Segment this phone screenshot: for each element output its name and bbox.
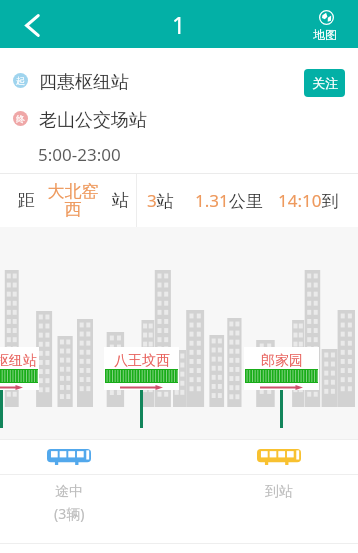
staticText: 郎家园 bbox=[261, 352, 303, 370]
staticText: 3站 bbox=[147, 189, 174, 212]
button[interactable]: Buses arriving bbox=[257, 449, 301, 466]
staticText: 四惠枢纽站 bbox=[39, 71, 129, 94]
staticText: 途中 bbox=[55, 483, 83, 501]
staticText: 大北窑西 bbox=[47, 181, 99, 220]
staticText: 地图 bbox=[313, 27, 337, 42]
staticText: 起 bbox=[16, 75, 25, 86]
staticText: 距 bbox=[18, 190, 35, 211]
staticText: (3辆) bbox=[54, 504, 85, 523]
button[interactable]: 途中 bbox=[47, 483, 91, 523]
staticText: 1 bbox=[172, 9, 186, 40]
staticText: 关注 bbox=[312, 75, 338, 91]
staticText: 八王坟西 bbox=[114, 352, 170, 370]
button[interactable]: Back bbox=[0, 0, 50, 48]
staticText: 到站 bbox=[265, 483, 293, 501]
staticText: 站 bbox=[112, 190, 129, 211]
button[interactable]: Map bbox=[304, 0, 350, 48]
staticText: 1.31公里 bbox=[195, 189, 263, 212]
button[interactable]: Buses en route bbox=[47, 449, 91, 466]
staticText: 14:10到 bbox=[278, 189, 339, 212]
button[interactable]: 到站 bbox=[257, 483, 301, 501]
staticText: 5:00-23:00 bbox=[38, 143, 121, 166]
staticText: 老山公交场站 bbox=[39, 109, 147, 132]
staticText: 四惠枢纽站 bbox=[0, 352, 37, 370]
staticText: 终 bbox=[16, 113, 25, 124]
button[interactable]: 关注 bbox=[304, 69, 345, 97]
